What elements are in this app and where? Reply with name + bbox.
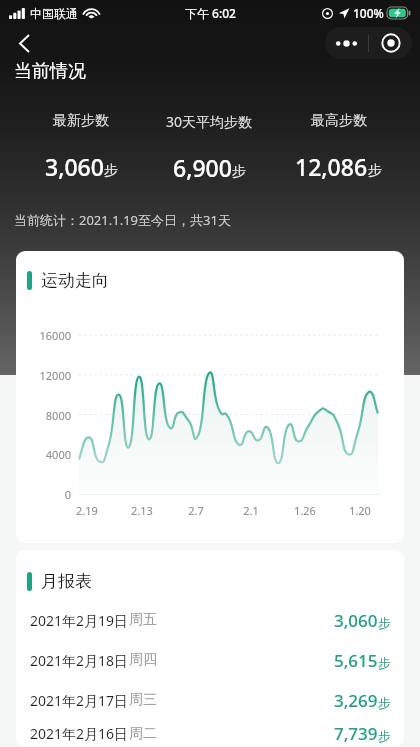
staticText: 2.1 — [231, 503, 271, 518]
staticText: 当前情况 — [14, 60, 86, 83]
staticText: 当前统计：2021.1.19至今日，共31天 — [14, 211, 231, 229]
staticText: 2021年2月18日 — [30, 651, 129, 670]
staticText: 2.19 — [67, 503, 107, 518]
staticText: 30天平均步数 — [166, 112, 253, 131]
staticText: 步 — [104, 162, 118, 180]
button[interactable]: Close — [369, 27, 412, 59]
button[interactable]: Back — [5, 26, 43, 60]
staticText: 周五 — [129, 611, 157, 629]
staticText: 4000 — [17, 447, 71, 462]
staticText: 步 — [378, 615, 391, 631]
staticText: 2.13 — [122, 503, 162, 518]
staticText: 3,269 — [334, 689, 378, 712]
staticText: 下午 6:02 — [185, 5, 236, 21]
staticText: 2021年2月17日 — [30, 691, 129, 710]
button[interactable]: More options — [325, 27, 368, 59]
staticText: 5,615 — [334, 649, 378, 672]
staticText: 2021年2月19日 — [30, 611, 129, 630]
staticText: 6,900 — [173, 152, 232, 183]
staticText: 3,060 — [334, 609, 378, 632]
staticText: 月报表 — [41, 571, 92, 592]
staticText: 12,086 — [295, 151, 368, 182]
staticText: 1.20 — [340, 503, 380, 518]
staticText: 步 — [368, 162, 382, 180]
button[interactable]: 2021年2月19日 — [16, 600, 404, 640]
staticText: 7,739 — [334, 722, 378, 745]
button[interactable]: 2021年2月16日 — [16, 720, 404, 747]
staticText: 3,060 — [45, 151, 104, 182]
staticText: 2.7 — [176, 503, 216, 518]
staticText: 步 — [378, 695, 391, 711]
staticText: 2021年2月16日 — [30, 724, 129, 743]
button[interactable]: 2021年2月17日 — [16, 680, 404, 720]
staticText: 1.26 — [285, 503, 325, 518]
staticText: 0 — [17, 487, 71, 502]
staticText: 中国联通 — [30, 6, 78, 21]
staticText: 最新步数 — [53, 112, 109, 130]
staticText: 周四 — [129, 651, 157, 669]
staticText: 步 — [378, 655, 391, 671]
staticText: 12000 — [17, 368, 71, 383]
staticText: 16000 — [17, 328, 71, 343]
button[interactable]: 2021年2月18日 — [16, 640, 404, 680]
staticText: 周三 — [129, 691, 157, 709]
staticText: 周二 — [129, 725, 157, 743]
staticText: 100% — [353, 5, 384, 21]
staticText: 8000 — [17, 408, 71, 423]
staticText: 运动走向 — [41, 270, 109, 291]
staticText: 最高步数 — [311, 112, 367, 130]
staticText: 步 — [232, 163, 246, 181]
staticText: 步 — [378, 728, 391, 744]
